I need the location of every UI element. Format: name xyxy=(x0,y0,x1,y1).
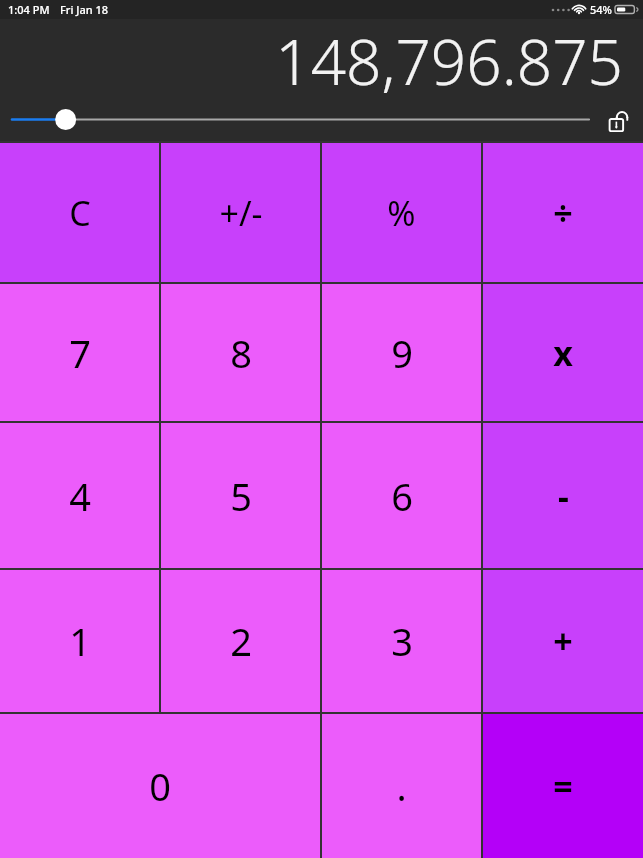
button[interactable]: 3 xyxy=(322,570,481,712)
button[interactable]: 0 xyxy=(0,714,320,858)
button[interactable]: = xyxy=(483,714,643,858)
button[interactable]: Unlock xyxy=(601,98,641,141)
staticText: 3 xyxy=(391,615,413,667)
staticText: . xyxy=(396,760,407,812)
staticText: x xyxy=(553,330,573,376)
button[interactable]: - xyxy=(483,423,643,568)
staticText: 1 xyxy=(69,615,91,667)
button[interactable]: 8 xyxy=(161,284,320,421)
button[interactable]: 6 xyxy=(322,423,481,568)
button[interactable]: ÷ xyxy=(483,143,643,282)
button[interactable]: C xyxy=(0,143,159,282)
staticText: 1:04 PM xyxy=(8,2,50,17)
staticText: 54% xyxy=(590,2,612,17)
staticText: + xyxy=(553,618,573,664)
button[interactable]: 4 xyxy=(0,423,159,568)
staticText: 4 xyxy=(69,470,91,522)
staticText: 0 xyxy=(149,760,171,812)
staticText: - xyxy=(558,473,569,519)
staticText: 5 xyxy=(230,470,252,522)
button[interactable]: x xyxy=(483,284,643,421)
button[interactable]: +/- xyxy=(161,143,320,282)
button[interactable]: Value slider xyxy=(0,98,601,141)
staticText: 7 xyxy=(69,327,91,379)
staticText: Fri Jan 18 xyxy=(60,2,109,17)
button[interactable]: 2 xyxy=(161,570,320,712)
button[interactable]: % xyxy=(322,143,481,282)
staticText: 8 xyxy=(230,327,252,379)
staticText: C xyxy=(69,190,91,236)
staticText: = xyxy=(553,763,573,809)
staticText: ÷ xyxy=(553,190,573,236)
staticText: 2 xyxy=(230,615,252,667)
staticText: 9 xyxy=(391,327,413,379)
button[interactable]: . xyxy=(322,714,481,858)
button[interactable]: 1 xyxy=(0,570,159,712)
button[interactable]: + xyxy=(483,570,643,712)
button[interactable]: 7 xyxy=(0,284,159,421)
staticText: 6 xyxy=(391,470,413,522)
staticText: 148,796.875 xyxy=(275,19,623,98)
button[interactable]: 5 xyxy=(161,423,320,568)
staticText: +/- xyxy=(219,190,263,236)
staticText: % xyxy=(387,190,416,236)
button[interactable]: 9 xyxy=(322,284,481,421)
